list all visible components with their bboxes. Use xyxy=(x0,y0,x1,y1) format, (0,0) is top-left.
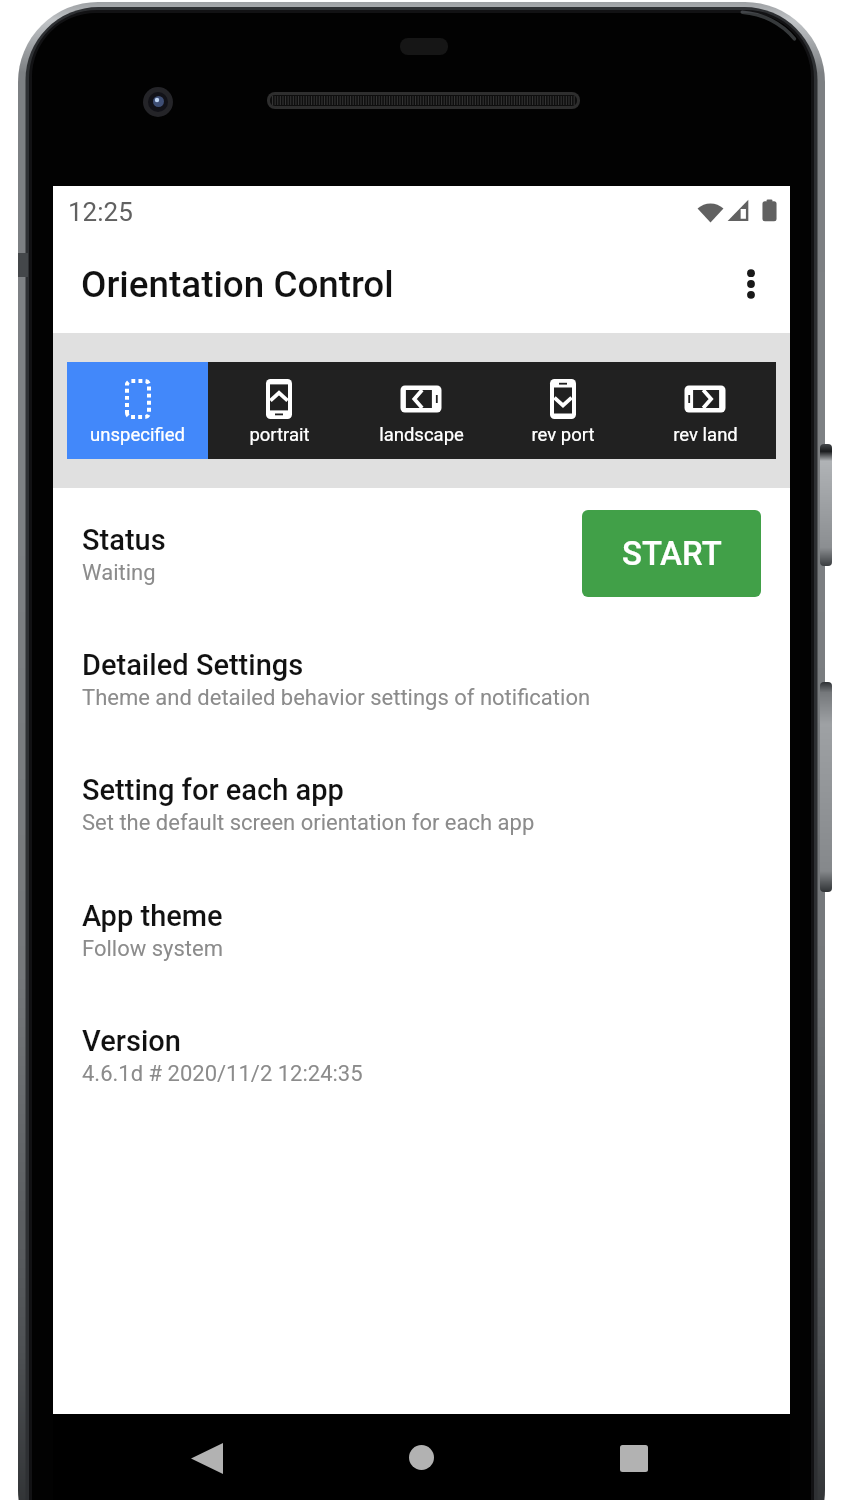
button[interactable]: portrait xyxy=(208,362,350,459)
staticText: Version xyxy=(82,1024,181,1058)
staticText: 12:25 xyxy=(68,197,133,227)
button[interactable]: landscape xyxy=(350,362,492,459)
staticText: Set the default screen orientation for e… xyxy=(82,810,535,836)
button[interactable]: Status xyxy=(53,513,790,623)
button[interactable]: App theme xyxy=(53,889,790,999)
staticText: Follow system xyxy=(82,936,223,962)
staticText: Setting for each app xyxy=(82,773,344,807)
staticText: rev port xyxy=(531,424,595,446)
staticText: Waiting xyxy=(82,560,156,586)
staticText: landscape xyxy=(379,424,464,446)
staticText: unspecified xyxy=(90,424,185,446)
button[interactable]: More options xyxy=(725,258,777,310)
staticText: App theme xyxy=(82,899,223,933)
staticText: Detailed Settings xyxy=(82,648,304,682)
button[interactable]: rev land xyxy=(634,362,776,459)
staticText: START xyxy=(622,534,722,573)
button[interactable]: Back xyxy=(175,1426,239,1490)
staticText: portrait xyxy=(249,424,310,446)
button[interactable]: Home xyxy=(389,1425,453,1489)
staticText: rev land xyxy=(673,424,738,446)
staticText: Status xyxy=(82,523,166,557)
staticText: Theme and detailed behavior settings of … xyxy=(82,685,591,711)
button[interactable]: unspecified xyxy=(67,362,208,459)
button[interactable]: Recent apps xyxy=(602,1426,666,1490)
button[interactable]: Setting for each app xyxy=(53,763,790,873)
button[interactable]: Detailed Settings xyxy=(53,638,790,748)
staticText: Orientation Control xyxy=(81,263,394,306)
staticText: 4.6.1d # 2020/11/2 12:24:35 xyxy=(82,1061,363,1087)
button[interactable]: rev port xyxy=(492,362,634,459)
button[interactable]: START xyxy=(582,510,761,597)
button[interactable]: Version xyxy=(53,1014,790,1124)
